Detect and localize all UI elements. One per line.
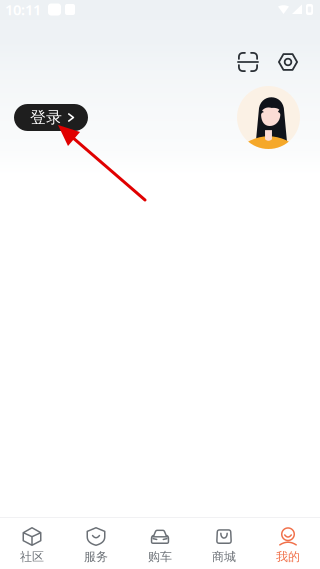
button[interactable]: Profile photo [237,86,300,149]
staticText: 社区 [20,549,44,564]
staticText: 10:11 [5,0,41,19]
button[interactable]: 服务 [64,518,128,569]
button[interactable]: Settings [272,46,304,78]
button[interactable]: 我的 [256,518,320,569]
staticText: 商城 [212,549,236,564]
button[interactable]: 商城 [192,518,256,569]
staticText: 登录 [30,108,62,127]
button[interactable]: 社区 [0,518,64,569]
button[interactable]: Scan [232,46,264,78]
staticText: 我的 [276,549,300,564]
button[interactable]: 登录 [14,104,88,131]
staticText: 购车 [148,549,172,564]
button[interactable]: 购车 [128,518,192,569]
staticText: 服务 [84,549,108,564]
